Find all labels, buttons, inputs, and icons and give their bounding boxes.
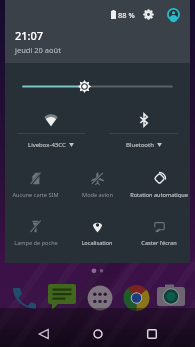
staticText: Mode avion	[82, 191, 113, 199]
staticText: Rotation automatique	[130, 191, 188, 199]
button[interactable]: User account	[167, 8, 180, 21]
button[interactable]: Settings	[143, 9, 154, 20]
button[interactable]: Bluetooth	[97, 99, 190, 149]
staticText: 21:07	[15, 28, 44, 43]
button[interactable]: Rotation automatique	[128, 166, 190, 199]
button[interactable]: Localisation	[66, 214, 128, 247]
button[interactable]: Aucune carte SIM	[5, 166, 66, 199]
button[interactable]: Livebox-43CC	[5, 99, 97, 149]
staticText: Livebox-43CC	[28, 141, 66, 149]
button[interactable]: Caster l'écran	[128, 214, 190, 247]
button[interactable]: Home	[86, 322, 110, 346]
staticText: Lampe de poche	[14, 239, 58, 247]
button[interactable]: Lampe de poche	[5, 214, 66, 247]
button[interactable]: Mode avion	[66, 166, 128, 199]
staticText: 88 %	[118, 10, 135, 20]
staticText: Localisation	[81, 239, 113, 247]
staticText: Aucune carte SIM	[12, 191, 59, 199]
button[interactable]	[5, 63, 190, 99]
button[interactable]: Back	[32, 322, 56, 346]
staticText: jeudi 20 août	[15, 45, 61, 55]
staticText: Bluetooth	[126, 141, 154, 149]
staticText: Caster l'écran	[141, 239, 177, 247]
button[interactable]: Recent apps	[140, 322, 164, 346]
